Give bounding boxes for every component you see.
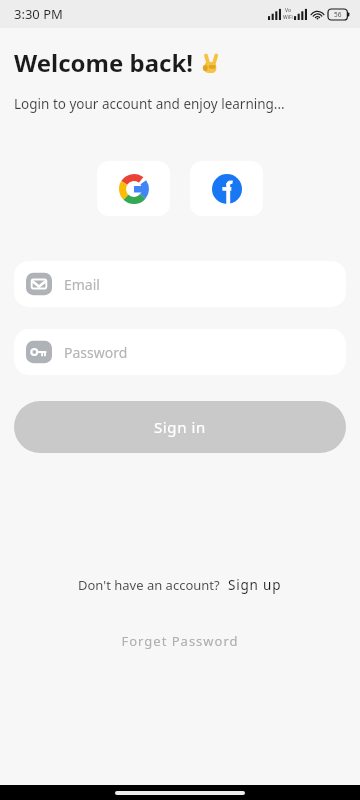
staticText: Email bbox=[64, 275, 100, 294]
button[interactable]: Forget Password bbox=[0, 632, 360, 650]
staticText: WiFi bbox=[283, 14, 293, 21]
staticText: Password bbox=[64, 343, 128, 362]
staticText: Sign in bbox=[154, 417, 206, 437]
staticText: 3:30 PM bbox=[14, 5, 63, 23]
button[interactable]: Password bbox=[14, 329, 346, 375]
button[interactable]: Sign up bbox=[228, 576, 282, 594]
button[interactable]: Email bbox=[14, 261, 346, 307]
staticText: Login to your account and enjoy learning… bbox=[14, 95, 285, 113]
staticText: Don't have an account? bbox=[78, 576, 220, 594]
staticText: Sign up bbox=[228, 576, 282, 594]
staticText: Vo bbox=[285, 7, 291, 14]
button[interactable]: Sign in with Facebook bbox=[190, 161, 263, 216]
staticText: 56 bbox=[334, 10, 342, 19]
staticText: Forget Password bbox=[121, 632, 239, 650]
button[interactable]: Sign in bbox=[14, 401, 346, 453]
button[interactable]: Sign in with Google bbox=[97, 161, 170, 216]
staticText: Welcome back! bbox=[14, 46, 194, 79]
